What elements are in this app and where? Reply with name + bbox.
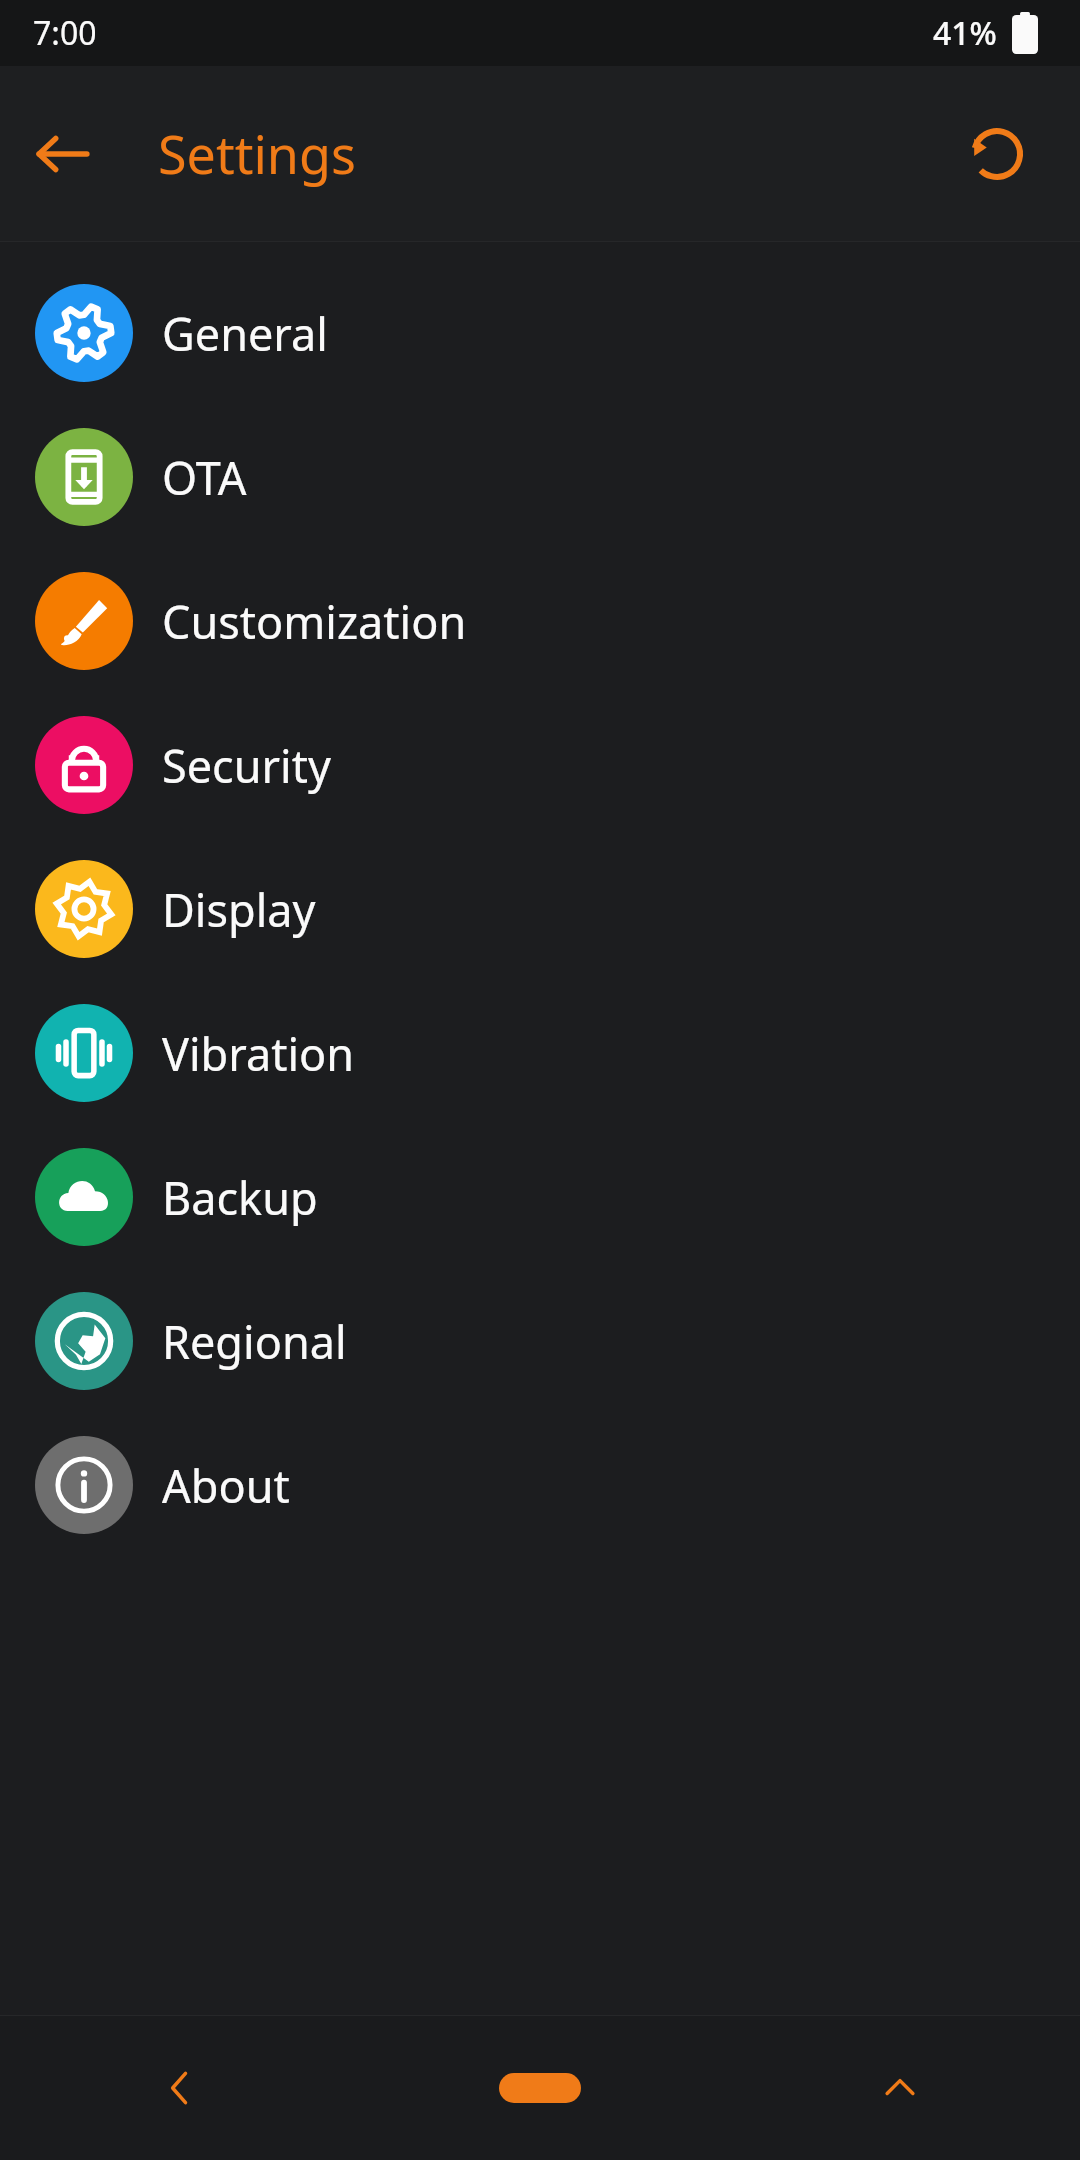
button[interactable]: OTA: [0, 405, 1080, 549]
button[interactable]: General: [0, 261, 1080, 405]
button[interactable]: Backup: [0, 1125, 1080, 1269]
staticText: Customization: [162, 591, 467, 652]
staticText: General: [162, 303, 328, 364]
button[interactable]: Back: [0, 2015, 360, 2160]
button[interactable]: About: [0, 1413, 1080, 1557]
staticText: OTA: [162, 447, 247, 508]
staticText: Regional: [162, 1311, 347, 1372]
button[interactable]: Vibration: [0, 981, 1080, 1125]
staticText: 41%: [933, 11, 997, 55]
staticText: About: [162, 1455, 290, 1516]
staticText: Settings: [158, 118, 356, 189]
button[interactable]: Recents: [720, 2015, 1080, 2160]
staticText: Security: [162, 735, 331, 796]
button[interactable]: Customization: [0, 549, 1080, 693]
staticText: Backup: [162, 1167, 318, 1228]
button[interactable]: Display: [0, 837, 1080, 981]
staticText: 7:00: [33, 11, 97, 55]
button[interactable]: Restore defaults: [952, 109, 1042, 199]
button[interactable]: Home: [360, 2015, 720, 2160]
button[interactable]: Security: [0, 693, 1080, 837]
button[interactable]: Regional: [0, 1269, 1080, 1413]
staticText: Vibration: [162, 1023, 355, 1084]
button[interactable]: Back: [18, 109, 108, 199]
staticText: Display: [162, 879, 316, 940]
